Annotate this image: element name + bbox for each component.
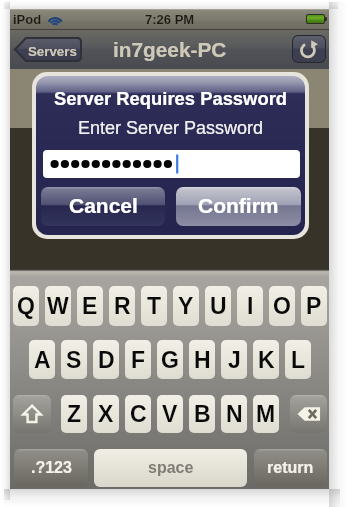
other: Delete <box>297 402 321 426</box>
button[interactable]: L <box>285 340 311 379</box>
staticText: Confirm <box>198 194 279 217</box>
button[interactable]: N <box>221 395 247 433</box>
staticText: G <box>161 347 179 373</box>
staticText: U <box>210 293 227 319</box>
staticText: in7geek-PC <box>113 38 227 61</box>
button[interactable]: Z <box>61 395 87 433</box>
staticText: H <box>194 347 211 373</box>
staticText: Y <box>178 293 194 319</box>
other: Shift <box>21 403 43 425</box>
staticText: .?123 <box>31 459 72 477</box>
button[interactable]: W <box>45 286 71 326</box>
button[interactable]: H <box>189 340 215 379</box>
button[interactable]: C <box>125 395 151 433</box>
button[interactable]: D <box>93 340 119 379</box>
button[interactable]: Y <box>173 286 199 326</box>
button[interactable]: S <box>61 340 87 379</box>
staticText: K <box>258 347 275 373</box>
button[interactable]: K <box>253 340 279 379</box>
staticText: L <box>291 347 306 373</box>
staticText: P <box>306 293 322 319</box>
staticText: V <box>162 401 178 427</box>
button[interactable]: Q <box>13 286 39 326</box>
staticText: Q <box>17 293 35 319</box>
staticText: M <box>256 401 276 427</box>
staticText: W <box>47 293 69 319</box>
button[interactable]: Delete <box>290 395 327 433</box>
button[interactable]: G <box>157 340 183 379</box>
staticText: I <box>247 293 254 319</box>
button[interactable]: R <box>109 286 135 326</box>
staticText: F <box>131 347 146 373</box>
button[interactable]: T <box>141 286 167 326</box>
staticText: X <box>98 401 114 427</box>
button[interactable]: space <box>94 449 247 487</box>
button[interactable]: return <box>254 449 327 487</box>
staticText: A <box>34 347 51 373</box>
button[interactable]: I <box>237 286 263 326</box>
button[interactable]: Shift <box>13 395 51 433</box>
staticText: 7:26 PM <box>145 12 195 27</box>
button[interactable]: F <box>125 340 151 379</box>
staticText: R <box>114 293 131 319</box>
button[interactable]: Servers <box>15 37 82 62</box>
button[interactable]: M <box>253 395 279 433</box>
button[interactable]: Cancel <box>41 187 165 226</box>
staticText: C <box>130 401 147 427</box>
staticText: N <box>226 401 243 427</box>
staticText: S <box>66 347 82 373</box>
button[interactable]: E <box>77 286 103 326</box>
staticText: space <box>148 459 194 477</box>
staticText: return <box>267 459 314 477</box>
button[interactable]: V <box>157 395 183 433</box>
button[interactable]: A <box>29 340 55 379</box>
button[interactable]: J <box>221 340 247 379</box>
staticText: Cancel <box>69 194 138 217</box>
staticText: Servers <box>28 44 77 59</box>
staticText: Z <box>67 401 82 427</box>
staticText: iPod <box>13 12 42 27</box>
button[interactable]: .?123 <box>14 449 88 487</box>
button[interactable]: Refresh <box>293 36 325 62</box>
staticText: J <box>228 347 241 373</box>
staticText: D <box>98 347 115 373</box>
button[interactable]: B <box>189 395 215 433</box>
staticText: E <box>82 293 98 319</box>
staticText: B <box>194 401 211 427</box>
staticText: O <box>273 293 291 319</box>
button[interactable]: P <box>301 286 327 326</box>
button[interactable]: X <box>93 395 119 433</box>
staticText: Server Requires Password <box>36 88 305 109</box>
button[interactable]: Confirm <box>176 187 301 226</box>
button[interactable]: U <box>205 286 231 326</box>
staticText: Enter Server Password <box>36 118 305 138</box>
button[interactable]: O <box>269 286 295 326</box>
staticText: T <box>147 293 162 319</box>
